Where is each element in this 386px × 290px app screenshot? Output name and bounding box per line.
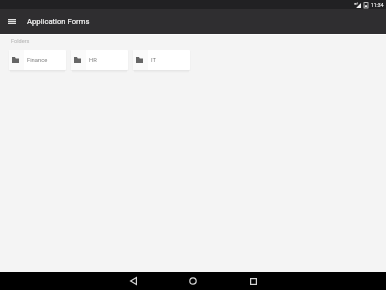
button[interactable]: Home [163, 272, 223, 290]
button[interactable]: Finance [9, 50, 66, 70]
staticText: Application Forms [27, 17, 90, 26]
staticText: 11:34 [371, 2, 384, 8]
button[interactable]: HR [71, 50, 128, 70]
staticText: HR [89, 57, 97, 64]
staticText: Folders [11, 38, 30, 45]
staticText: Finance [27, 57, 48, 64]
button[interactable]: Open navigation drawer [4, 14, 20, 30]
staticText: IT [151, 57, 156, 64]
button[interactable]: Recent apps [223, 272, 283, 290]
button[interactable]: Back [103, 272, 163, 290]
button[interactable]: IT [133, 50, 190, 70]
